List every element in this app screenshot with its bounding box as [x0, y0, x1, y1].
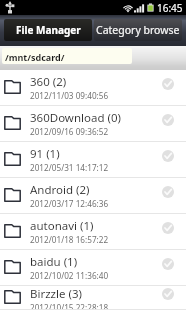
- button[interactable]: Select item: [161, 149, 175, 163]
- button[interactable]: Birzzle (3): [0, 286, 186, 310]
- button[interactable]: Select item: [161, 185, 175, 199]
- staticText: 16:45: [157, 1, 183, 15]
- button[interactable]: autonavi (1): [0, 214, 186, 250]
- staticText: File Manager: [16, 23, 81, 37]
- staticText: 2012/05/31 14:17:12: [30, 162, 109, 173]
- staticText: 2012/10/02 11:36:40: [30, 270, 109, 281]
- button[interactable]: baidu (1): [0, 250, 186, 286]
- button[interactable]: 360 (2): [0, 70, 186, 106]
- staticText: /mnt/sdcard/: [5, 51, 65, 63]
- staticText: 2012/11/03 09:40:56: [30, 90, 109, 101]
- button[interactable]: Select item: [161, 287, 175, 301]
- button[interactable]: 91 (1): [0, 142, 186, 178]
- staticText: 2012/10/15 22:28:18: [30, 302, 109, 309]
- button[interactable]: Android (2): [0, 178, 186, 214]
- staticText: Category browse: [96, 23, 180, 37]
- button[interactable]: Select item: [161, 113, 175, 127]
- button[interactable]: Select item: [161, 77, 175, 91]
- button[interactable]: Select item: [161, 221, 175, 235]
- staticText: baidu (1): [30, 254, 78, 270]
- staticText: 91 (1): [30, 146, 60, 162]
- staticText: 2012/01/18 16:57:22: [30, 234, 109, 245]
- staticText: 360 (2): [30, 74, 67, 90]
- button[interactable]: /mnt/sdcard/: [2, 48, 132, 64]
- button[interactable]: Select item: [161, 257, 175, 271]
- button[interactable]: 360Download (0): [0, 106, 186, 142]
- staticText: autonavi (1): [30, 218, 94, 234]
- staticText: 360Download (0): [30, 110, 121, 126]
- staticText: Android (2): [30, 182, 90, 198]
- staticText: 2012/09/16 09:36:52: [30, 126, 109, 137]
- button[interactable]: Category browse: [94, 19, 182, 41]
- staticText: 2012/03/17 12:46:36: [30, 198, 109, 209]
- staticText: Birzzle (3): [30, 286, 82, 302]
- button[interactable]: File Manager: [4, 19, 92, 41]
